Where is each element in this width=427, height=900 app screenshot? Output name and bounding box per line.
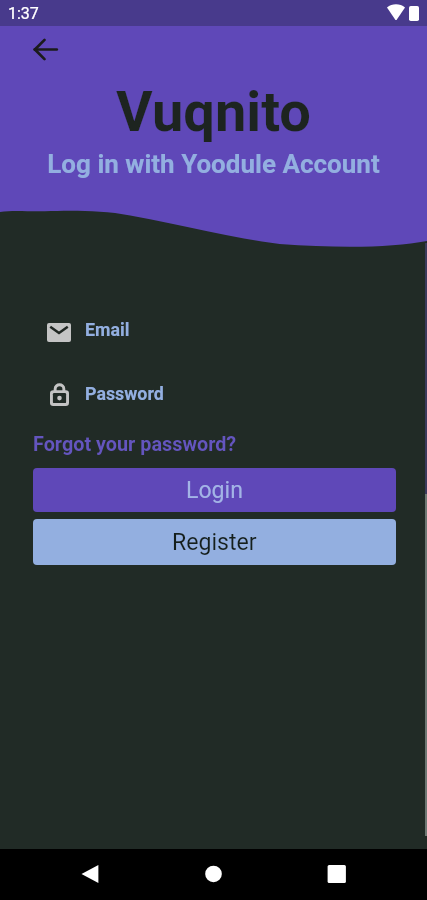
staticText: Register	[172, 529, 257, 556]
button[interactable]: Back	[23, 28, 66, 71]
staticText: Log in with Yoodule Account	[0, 149, 427, 179]
button[interactable]: Password	[0, 378, 427, 414]
button[interactable]: Forgot your password?	[33, 433, 237, 456]
staticText: Login	[186, 477, 243, 504]
button[interactable]: Email	[0, 314, 427, 350]
button[interactable]: Register	[33, 519, 396, 565]
staticText: Email	[85, 319, 130, 340]
staticText: 1:37	[8, 4, 39, 23]
staticText: Password	[85, 383, 164, 404]
button[interactable]: Login	[33, 468, 396, 512]
staticText: Vuqnito	[0, 79, 427, 145]
